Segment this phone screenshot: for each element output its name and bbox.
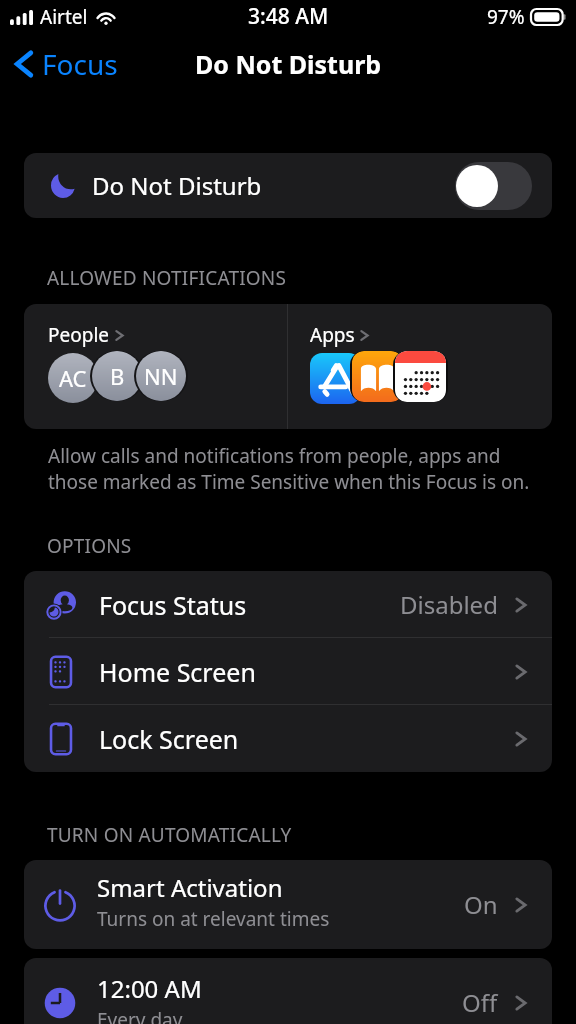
button[interactable]: People (24, 304, 287, 429)
button[interactable]: Home Screen (24, 638, 552, 705)
staticText: Home Screen (99, 655, 256, 689)
staticText: Focus (42, 45, 118, 83)
staticText: On (464, 888, 498, 921)
button[interactable]: 12:00 AM (24, 958, 552, 1024)
staticText: Focus Status (99, 588, 247, 622)
staticText: AC (59, 363, 87, 393)
staticText: TURN ON AUTOMATICALLY (47, 822, 292, 848)
staticText: Disabled (400, 588, 498, 621)
staticText: Apps (310, 322, 355, 348)
staticText: Off (462, 986, 498, 1019)
button[interactable]: Lock Screen (24, 705, 552, 772)
button[interactable]: Do Not Disturb toggle (455, 162, 532, 210)
staticText: Smart Activation (97, 871, 283, 904)
button[interactable]: Do Not Disturb (24, 153, 552, 218)
staticText: 3:48 AM (248, 2, 329, 31)
staticText: Lock Screen (99, 722, 239, 756)
staticText: OPTIONS (47, 533, 132, 559)
staticText: Every day (97, 1007, 183, 1024)
staticText: Do Not Disturb (92, 169, 262, 202)
button[interactable]: Smart Activation (24, 860, 552, 949)
staticText: 12:00 AM (97, 972, 202, 1005)
staticText: Do Not Disturb (195, 47, 382, 81)
staticText: 97% (487, 4, 525, 30)
staticText: Allow calls and notifications from peopl… (48, 443, 530, 495)
staticText: ALLOWED NOTIFICATIONS (47, 265, 287, 291)
button[interactable]: Focus (10, 41, 122, 87)
button[interactable]: Apps (288, 304, 552, 429)
staticText: Airtel (40, 4, 88, 30)
staticText: Turns on at relevant times (97, 906, 330, 932)
staticText: People (48, 322, 110, 348)
staticText: NN (144, 361, 178, 391)
button[interactable]: Focus Status (24, 571, 552, 638)
staticText: B (110, 361, 125, 391)
